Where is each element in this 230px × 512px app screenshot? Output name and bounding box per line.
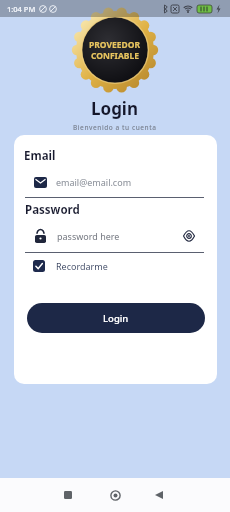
button[interactable]: password here (24, 226, 204, 246)
staticText: Login (91, 97, 139, 120)
staticText: Bienvenido a tu cuenta (73, 123, 157, 132)
button[interactable] (142, 478, 176, 512)
button[interactable] (183, 231, 195, 241)
staticText: 1:04 PM (7, 4, 36, 14)
button[interactable] (51, 478, 85, 512)
staticText: CONFIABLE (91, 50, 139, 62)
staticText: password here (57, 230, 120, 242)
staticText: Recordarme (56, 260, 108, 272)
staticText: Email (24, 148, 56, 164)
staticText: PROVEEDOR (89, 39, 141, 51)
staticText: Login (103, 312, 129, 325)
button[interactable] (98, 478, 132, 512)
staticText: email@email.com (56, 176, 132, 188)
button[interactable]: email@email.com (24, 172, 204, 192)
button[interactable]: Recordarme (33, 259, 108, 273)
button[interactable]: Login (27, 303, 205, 333)
staticText: Password (25, 202, 80, 218)
